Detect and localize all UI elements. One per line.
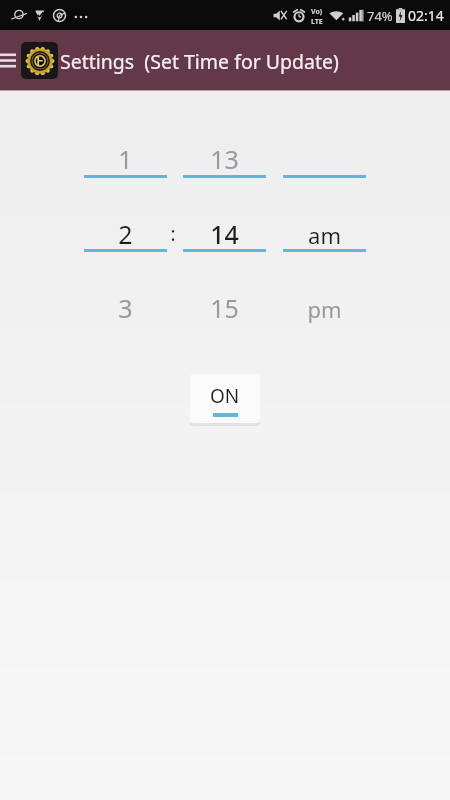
staticText: Vo) <box>311 7 323 17</box>
staticText: am <box>308 220 341 250</box>
staticText: LTE <box>311 17 323 24</box>
staticText: 15 <box>210 291 239 325</box>
staticText: 2 <box>118 217 133 251</box>
staticText: ON <box>210 383 240 409</box>
staticText: 3 <box>118 291 133 325</box>
button[interactable]: Minute <box>180 111 270 311</box>
staticText: 02:14 <box>408 6 444 25</box>
button[interactable]: Open navigation drawer <box>0 38 19 82</box>
staticText: pm <box>307 294 342 324</box>
button[interactable]: Hour <box>80 111 170 311</box>
button[interactable]: Update enabled: ON <box>190 374 260 424</box>
staticText: 1 <box>118 142 133 176</box>
staticText: 74% <box>367 7 393 25</box>
staticText: 13 <box>210 142 239 176</box>
staticText: : <box>170 221 176 247</box>
staticText: Settings (Set Time for Update) <box>60 48 339 75</box>
staticText: 14 <box>210 217 239 251</box>
button[interactable]: AM or PM <box>280 111 368 311</box>
button[interactable]: App logo <box>21 42 58 79</box>
